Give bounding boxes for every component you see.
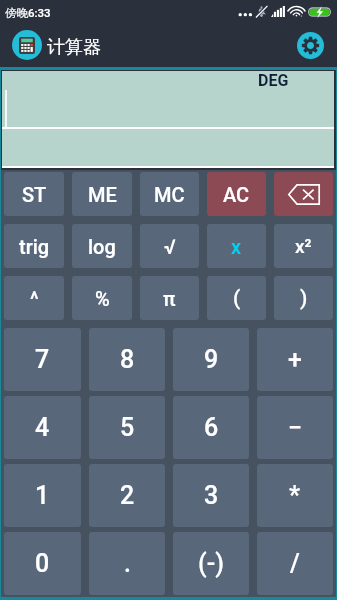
staticText: 2	[120, 481, 135, 510]
staticText: x²	[295, 235, 312, 257]
button[interactable]	[274, 172, 333, 216]
button[interactable]: Settings	[297, 32, 324, 59]
button[interactable]: 2	[89, 464, 165, 527]
button[interactable]: 7	[4, 328, 81, 391]
button[interactable]: *	[257, 464, 333, 527]
staticText: 6	[204, 413, 219, 442]
button[interactable]: (	[207, 276, 266, 320]
button[interactable]: trig	[4, 224, 64, 268]
button[interactable]: %	[72, 276, 132, 320]
button[interactable]: 4	[4, 396, 81, 459]
staticText: log	[88, 235, 116, 258]
button[interactable]: +	[257, 328, 333, 391]
button[interactable]: 8	[89, 328, 165, 391]
staticText: 5	[120, 413, 135, 442]
button[interactable]: √	[140, 224, 199, 268]
staticText: 9	[204, 345, 219, 374]
button[interactable]: 3	[173, 464, 249, 527]
button[interactable]: (-)	[173, 532, 249, 595]
staticText: ST	[22, 183, 47, 206]
button[interactable]: MC	[140, 172, 199, 216]
staticText: %	[95, 287, 110, 310]
staticText: (	[233, 286, 241, 311]
staticText: DEG	[258, 71, 289, 90]
staticText: √	[164, 235, 176, 258]
staticText: 3	[204, 481, 219, 510]
staticText: 7	[35, 345, 50, 374]
staticText: MC	[154, 183, 185, 206]
button[interactable]: AC	[207, 172, 266, 216]
button[interactable]: −	[257, 396, 333, 459]
staticText: x	[231, 235, 242, 258]
button[interactable]: 0	[4, 532, 81, 595]
staticText: )	[300, 286, 308, 311]
button[interactable]: log	[72, 224, 132, 268]
button[interactable]: Calculator	[12, 30, 42, 60]
button[interactable]: ME	[72, 172, 132, 216]
staticText: −	[288, 413, 303, 442]
button[interactable]: )	[274, 276, 333, 320]
button[interactable]: .	[89, 532, 165, 595]
staticText: ME	[88, 183, 117, 206]
staticText: 1	[35, 481, 50, 510]
staticText: 傍晚6:33	[5, 6, 51, 20]
button[interactable]: x	[207, 224, 266, 268]
staticText: π	[163, 287, 176, 310]
staticText: 8	[120, 345, 135, 374]
button[interactable]: x²	[274, 224, 333, 268]
staticText: /	[290, 549, 300, 578]
staticText: +	[288, 345, 302, 374]
button[interactable]: 6	[173, 396, 249, 459]
staticText: 计算器	[47, 36, 101, 59]
staticText: .	[124, 549, 131, 578]
staticText: 0	[35, 549, 50, 578]
staticText: AC	[223, 183, 250, 206]
button[interactable]: /	[257, 532, 333, 595]
button[interactable]: ^	[4, 276, 64, 320]
button[interactable]: 5	[89, 396, 165, 459]
staticText: *	[289, 481, 301, 510]
button[interactable]: π	[140, 276, 199, 320]
button[interactable]: ST	[4, 172, 64, 216]
staticText: ^	[30, 287, 39, 310]
button[interactable]: 1	[4, 464, 81, 527]
button[interactable]: 9	[173, 328, 249, 391]
staticText: trig	[19, 235, 50, 258]
staticText: 4	[35, 413, 50, 442]
staticText: (-)	[198, 549, 224, 578]
